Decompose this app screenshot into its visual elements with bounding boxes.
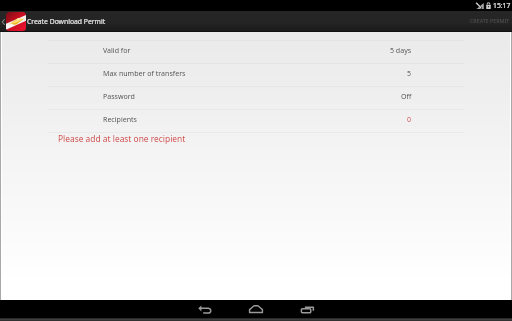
button[interactable]: Home [248, 301, 264, 317]
button[interactable]: Max number of transfers [48, 64, 464, 86]
staticText: 5 [407, 68, 412, 78]
staticText: 5 days [390, 45, 412, 55]
staticText: 0 [407, 114, 412, 124]
button[interactable]: Password [48, 87, 464, 109]
staticText: Valid for [103, 45, 131, 55]
staticText: Off [401, 91, 412, 101]
staticText: Password [103, 91, 135, 101]
button[interactable]: Back [196, 301, 212, 317]
button[interactable]: Navigate up [1, 11, 106, 32]
button[interactable]: CREATE PERMIT [464, 11, 512, 32]
staticText: CREATE PERMIT [470, 17, 510, 24]
button[interactable]: Recipients [48, 110, 464, 132]
staticText: Max number of transfers [103, 68, 186, 78]
button[interactable]: Valid for [48, 41, 464, 63]
staticText: Please add at least one recipient [58, 133, 186, 144]
button[interactable]: Recent apps [300, 301, 316, 317]
staticText: Create Download Permit [27, 17, 106, 26]
staticText: 15:17 [493, 1, 511, 10]
staticText: Recipients [103, 114, 137, 124]
other: Navigate up [1, 17, 5, 27]
